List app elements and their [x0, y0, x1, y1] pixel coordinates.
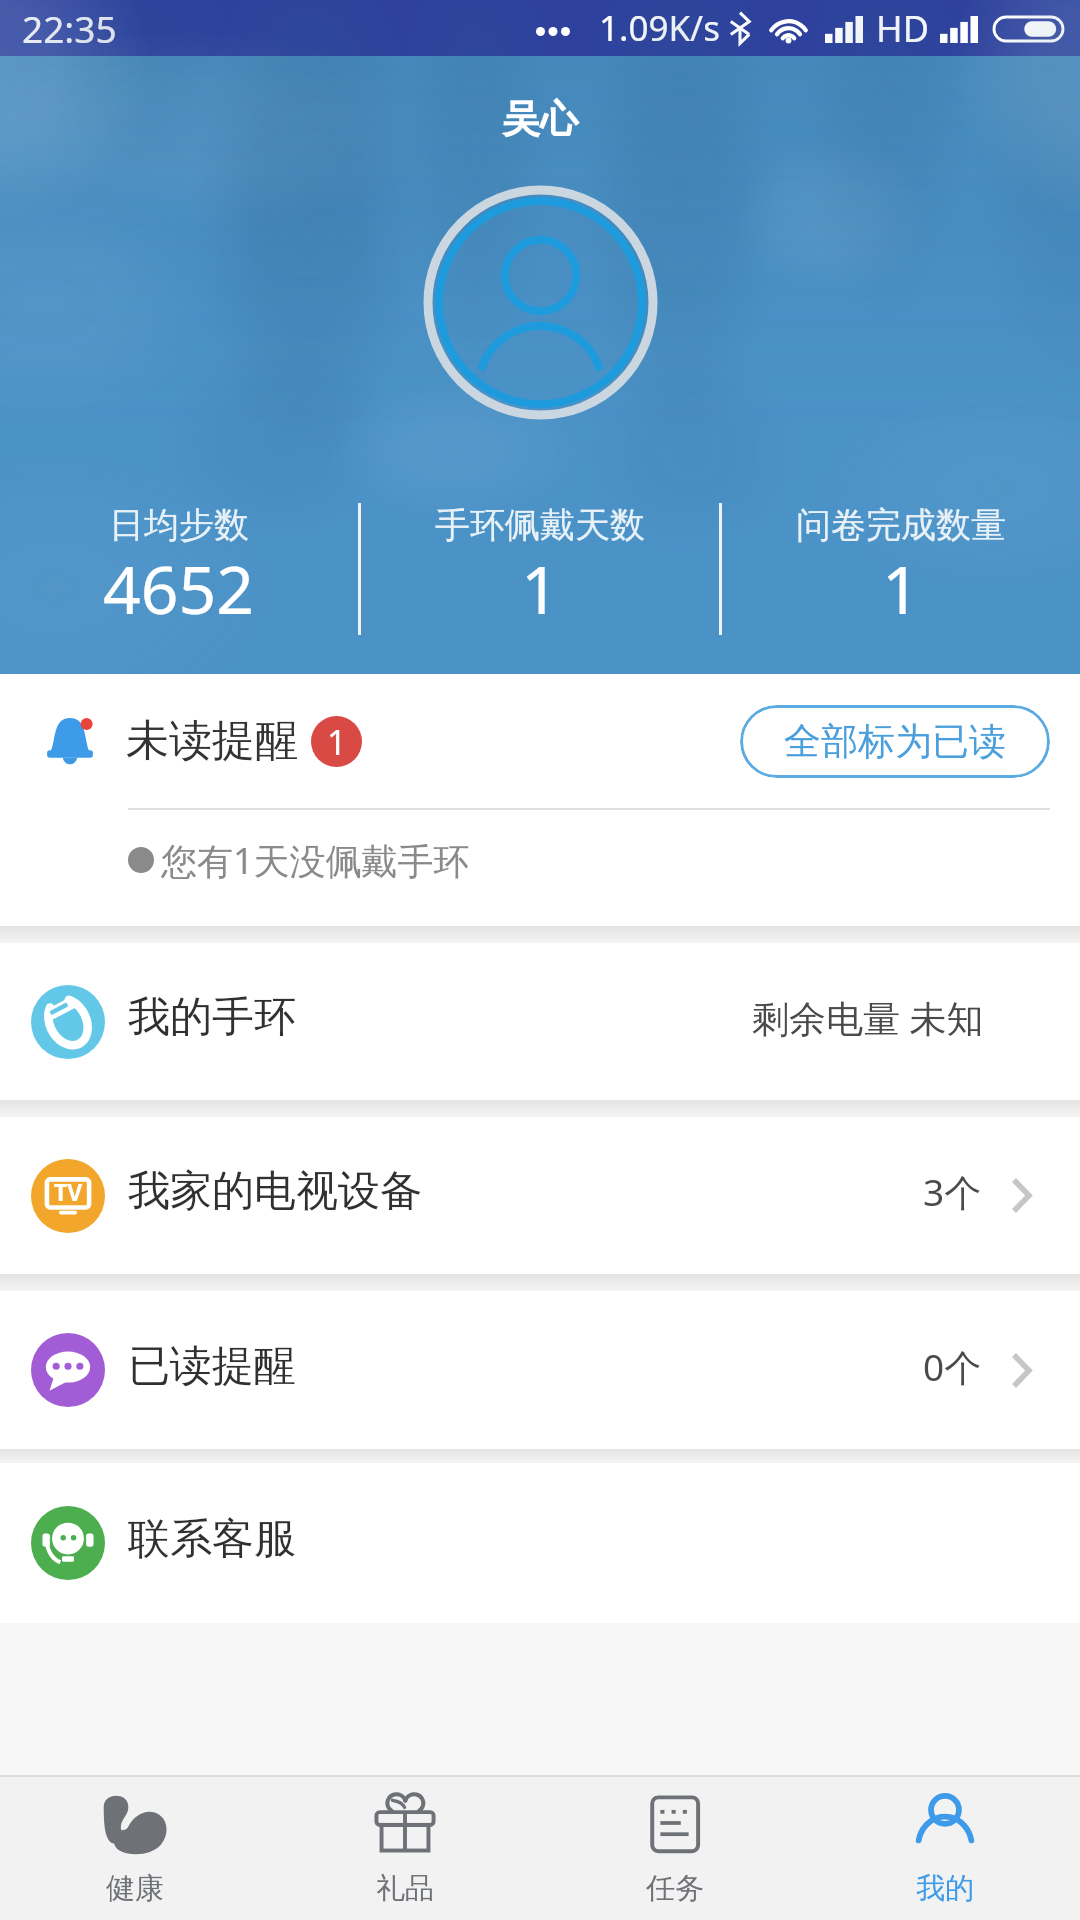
button[interactable]: 礼品	[270, 1777, 540, 1920]
staticText: 吴心	[502, 95, 578, 143]
staticText: 任务	[646, 1870, 704, 1907]
staticText: 1	[327, 719, 347, 765]
staticText: 剩余电量 未知	[752, 992, 984, 1043]
staticText: 1	[882, 543, 920, 633]
staticText: 全部标为已读	[784, 718, 1006, 765]
staticText: 我的	[916, 1870, 974, 1907]
button[interactable]: 已读提醒	[0, 1291, 1080, 1449]
button[interactable]: 我的手环	[0, 943, 1080, 1100]
button[interactable]: 任务	[540, 1777, 810, 1920]
staticText: 4652	[103, 543, 255, 633]
button[interactable]: 健康	[0, 1777, 270, 1920]
button[interactable]: 您有1天没佩戴手环	[0, 810, 1080, 926]
staticText: 联系客服	[128, 1513, 296, 1566]
staticText: 未读提醒	[126, 714, 298, 768]
button[interactable]: TV	[0, 1117, 1080, 1274]
staticText: 1	[521, 543, 559, 633]
staticText: 您有1天没佩戴手环	[161, 836, 470, 885]
staticText: 已读提醒	[128, 1340, 296, 1393]
staticText: HD	[876, 4, 929, 53]
staticText: 我家的电视设备	[128, 1165, 422, 1218]
staticText: 手环佩戴天数	[435, 503, 645, 547]
button[interactable]: 我的	[810, 1777, 1080, 1920]
staticText: TV	[54, 1176, 83, 1207]
staticText: 礼品	[376, 1870, 434, 1907]
button[interactable]: 联系客服	[0, 1463, 1080, 1623]
button[interactable]: 全部标为已读	[740, 705, 1050, 778]
staticText: 问卷完成数量	[796, 503, 1006, 547]
staticText: 22:35	[22, 3, 117, 53]
staticText: 3个	[923, 1166, 982, 1217]
staticText: 0个	[923, 1341, 982, 1392]
staticText: 1.09K/s	[599, 4, 720, 52]
staticText: 日均步数	[109, 503, 249, 547]
staticText: 健康	[106, 1870, 164, 1907]
staticText: 我的手环	[128, 991, 296, 1044]
button[interactable]: 未读提醒	[0, 674, 1080, 808]
